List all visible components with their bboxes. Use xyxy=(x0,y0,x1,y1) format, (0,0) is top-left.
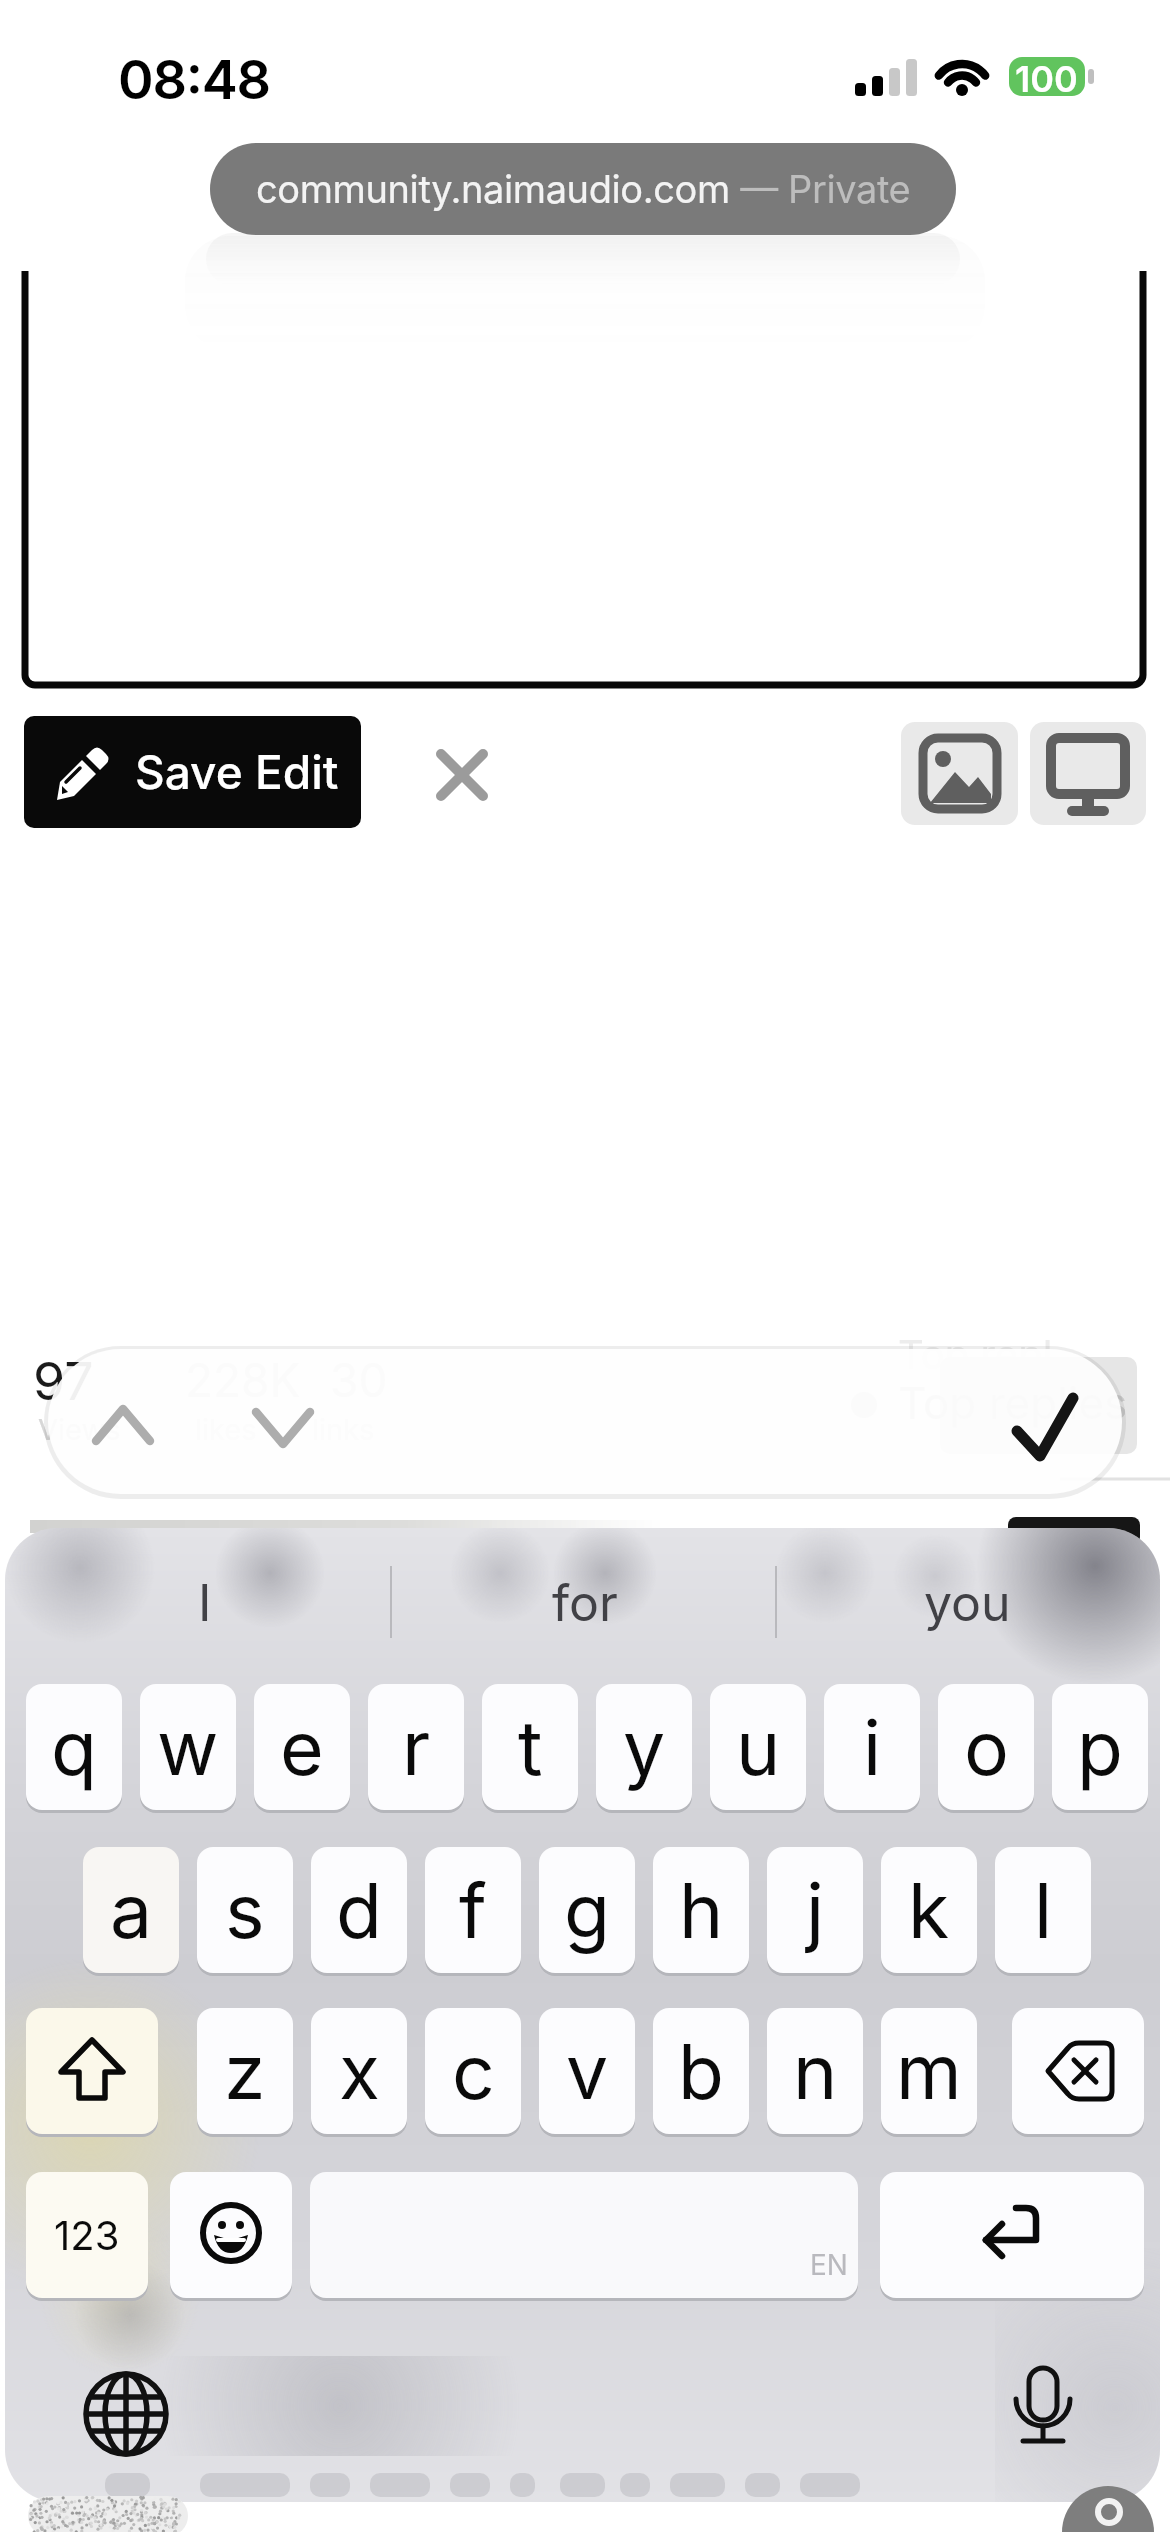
staticText: EN xyxy=(810,2248,848,2282)
staticText: I xyxy=(198,1573,212,1633)
button[interactable]: for xyxy=(445,1558,725,1648)
staticText: Save Edit xyxy=(135,744,339,800)
staticText: Views xyxy=(38,1412,121,1447)
button[interactable]: t xyxy=(482,1684,578,1810)
button[interactable]: m xyxy=(881,2008,977,2134)
staticText: d xyxy=(336,1865,382,1956)
staticText: h xyxy=(679,1865,724,1956)
button[interactable]: Save Edit xyxy=(24,716,361,828)
staticText: k xyxy=(908,1865,950,1956)
staticText: community.naimaudio.com — Private xyxy=(256,166,911,212)
staticText: Top repl xyxy=(898,1330,1053,1378)
button[interactable] xyxy=(238,1383,330,1467)
staticText: e xyxy=(280,1702,324,1793)
staticText: you xyxy=(924,1573,1011,1633)
button[interactable] xyxy=(425,740,497,810)
staticText: u xyxy=(736,1702,781,1793)
button[interactable] xyxy=(1012,2008,1144,2134)
staticText: c xyxy=(452,2026,495,2117)
button[interactable] xyxy=(1030,722,1146,825)
button[interactable]: b xyxy=(653,2008,749,2134)
staticText: y xyxy=(623,1702,666,1793)
staticText: r xyxy=(402,1702,431,1793)
button[interactable]: i xyxy=(824,1684,920,1810)
staticText: links xyxy=(312,1412,375,1447)
staticText: v xyxy=(566,2026,609,2117)
button[interactable] xyxy=(170,2172,292,2298)
staticText: 97 xyxy=(33,1350,94,1413)
button[interactable]: s xyxy=(197,1847,293,1973)
button[interactable]: o xyxy=(938,1684,1034,1810)
button[interactable] xyxy=(80,2368,172,2460)
button[interactable] xyxy=(880,2172,1144,2298)
button[interactable]: l xyxy=(995,1847,1091,1973)
staticText: m xyxy=(896,2026,962,2117)
staticText: w xyxy=(157,1702,219,1793)
button[interactable] xyxy=(995,1376,1095,1472)
button[interactable] xyxy=(1000,2360,1090,2460)
button[interactable]: 123 xyxy=(26,2172,148,2298)
button[interactable] xyxy=(26,2008,158,2134)
button[interactable]: EN xyxy=(310,2172,858,2298)
staticText: b xyxy=(678,2026,724,2117)
button[interactable]: u xyxy=(710,1684,806,1810)
staticText: 08:48 xyxy=(118,47,270,112)
button[interactable]: c xyxy=(425,2008,521,2134)
staticText: s xyxy=(225,1865,265,1956)
button[interactable]: p xyxy=(1052,1684,1148,1810)
staticText: i xyxy=(863,1702,882,1793)
button[interactable]: j xyxy=(767,1847,863,1973)
staticText: n xyxy=(793,2026,838,2117)
button[interactable]: z xyxy=(197,2008,293,2134)
staticText: t xyxy=(518,1702,543,1793)
staticText: o xyxy=(964,1702,1009,1793)
staticText: z xyxy=(224,2026,266,2117)
staticText: Top replies xyxy=(898,1376,1128,1429)
button[interactable]: v xyxy=(539,2008,635,2134)
button[interactable]: x xyxy=(311,2008,407,2134)
staticText: l xyxy=(1034,1865,1053,1956)
staticText: j xyxy=(806,1865,825,1956)
staticText: x xyxy=(339,2026,380,2117)
button[interactable]: k xyxy=(881,1847,977,1973)
button[interactable]: f xyxy=(425,1847,521,1973)
staticText: likes xyxy=(195,1412,257,1447)
button[interactable] xyxy=(78,1383,170,1467)
button[interactable]: w xyxy=(140,1684,236,1810)
button[interactable]: you xyxy=(827,1558,1107,1648)
staticText: q xyxy=(51,1702,97,1793)
staticText: 123 xyxy=(54,2211,120,2259)
button[interactable]: n xyxy=(767,2008,863,2134)
button[interactable]: e xyxy=(254,1684,350,1810)
staticText: a xyxy=(110,1865,153,1956)
staticText: p xyxy=(1077,1702,1123,1793)
button[interactable]: y xyxy=(596,1684,692,1810)
button[interactable]: q xyxy=(26,1684,122,1810)
button[interactable]: d xyxy=(311,1847,407,1973)
button[interactable] xyxy=(901,722,1018,825)
staticText: f xyxy=(459,1865,487,1956)
button[interactable]: r xyxy=(368,1684,464,1810)
button[interactable]: I xyxy=(65,1558,345,1648)
staticText: for xyxy=(552,1573,618,1633)
staticText: g xyxy=(564,1865,610,1956)
button[interactable]: g xyxy=(539,1847,635,1973)
button[interactable]: a xyxy=(83,1847,179,1973)
button[interactable]: community.naimaudio.com — Private xyxy=(210,143,956,235)
staticText: 100 xyxy=(1015,57,1078,97)
button[interactable]: h xyxy=(653,1847,749,1973)
